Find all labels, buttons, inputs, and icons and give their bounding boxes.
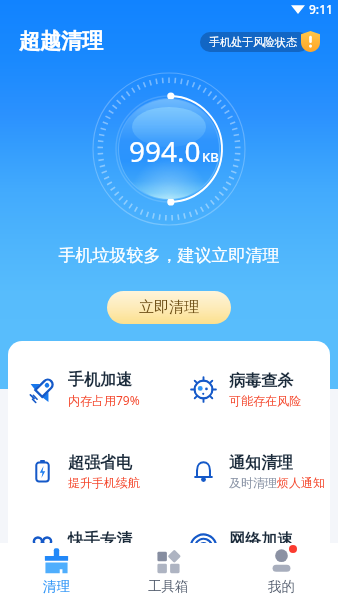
- staticText: 994.0: [129, 132, 201, 170]
- staticText: 网络加速: [229, 530, 293, 550]
- button[interactable]: 超强省电: [8, 443, 169, 499]
- staticText: 手机垃圾较多，建议立即清理: [0, 245, 338, 266]
- staticText: 内存占用79%: [68, 392, 140, 408]
- other: Risk warning: [301, 31, 320, 52]
- staticText: 工具箱: [148, 578, 189, 595]
- staticText: 超越清理: [19, 28, 103, 54]
- staticText: 手机处于风险状态: [209, 35, 297, 49]
- staticText: 清理: [43, 578, 70, 595]
- button[interactable]: 快手专清: [8, 513, 169, 569]
- staticText: 立即清理: [139, 298, 199, 317]
- staticText: 及时清理: [229, 475, 277, 490]
- staticText: 病毒查杀: [229, 371, 293, 391]
- button[interactable]: 立即清理: [107, 291, 231, 324]
- button[interactable]: 通知清理: [169, 443, 330, 499]
- button[interactable]: 病毒查杀: [169, 361, 330, 417]
- staticText: 可能存在风险: [229, 393, 301, 408]
- button[interactable]: 工具箱: [112, 543, 225, 600]
- staticText: 通知清理: [229, 453, 293, 473]
- button[interactable]: 网络加速: [169, 513, 330, 569]
- button[interactable]: 手机加速: [8, 361, 169, 417]
- staticText: 我的: [268, 578, 295, 595]
- button[interactable]: 清理: [0, 543, 112, 600]
- button[interactable]: 我的: [225, 543, 338, 600]
- staticText: KB: [202, 148, 219, 166]
- staticText: 手机加速: [68, 370, 132, 390]
- staticText: 提升手机续航: [68, 475, 140, 490]
- staticText: 烦人通知: [277, 475, 325, 490]
- staticText: 快手专清: [68, 530, 132, 550]
- staticText: 超强省电: [68, 453, 132, 473]
- button[interactable]: 手机处于风险状态: [200, 32, 309, 52]
- staticText: 9:11: [309, 1, 333, 17]
